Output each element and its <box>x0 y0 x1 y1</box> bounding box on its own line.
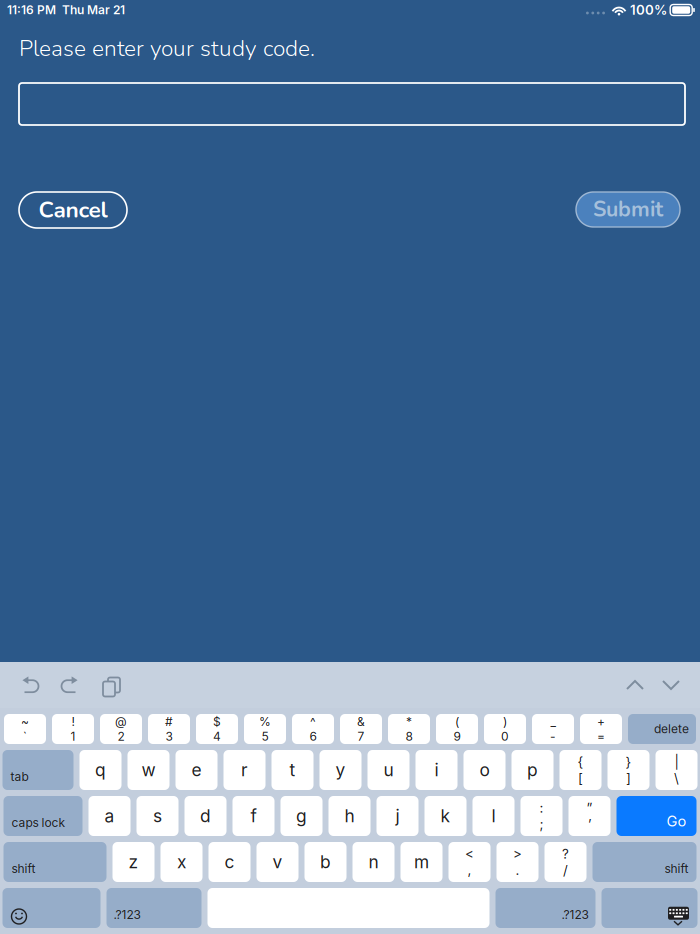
staticText: .?123 <box>561 907 588 922</box>
button[interactable]: delete <box>628 714 696 744</box>
button[interactable]: & <box>340 714 382 744</box>
staticText: % <box>259 714 271 729</box>
staticText: : <box>539 800 543 816</box>
staticText: d <box>200 805 211 826</box>
button[interactable]: a <box>88 796 130 836</box>
staticText: 0 <box>501 729 509 743</box>
button[interactable]: .?123 <box>106 888 201 928</box>
button[interactable]: + <box>580 714 622 744</box>
button[interactable]: * <box>388 714 430 744</box>
button[interactable]: ~ <box>4 714 46 744</box>
staticText: > <box>513 846 522 862</box>
staticText: 2 <box>117 729 124 743</box>
staticText: 8 <box>405 729 412 743</box>
staticText: p <box>527 759 538 780</box>
button[interactable]: < <box>448 842 490 882</box>
staticText: Submit <box>593 195 663 224</box>
button[interactable]: | <box>655 750 697 790</box>
button[interactable]: Hide Keyboard <box>601 888 697 928</box>
staticText: ~ <box>21 714 29 729</box>
staticText: shift <box>664 861 688 876</box>
button[interactable]: shift <box>592 842 696 882</box>
staticText: [ <box>578 770 583 786</box>
staticText: _ <box>550 714 555 729</box>
button[interactable]: s <box>136 796 178 836</box>
button[interactable]: $ <box>196 714 238 744</box>
button[interactable]: { <box>559 750 601 790</box>
button[interactable]: p <box>511 750 553 790</box>
button[interactable]: } <box>607 750 649 790</box>
button[interactable]: Next Field <box>662 679 680 691</box>
button[interactable]: ( <box>436 714 478 744</box>
button[interactable]: e <box>175 750 217 790</box>
staticText: = <box>597 729 605 743</box>
button[interactable]: Cancel <box>19 192 127 228</box>
button[interactable]: # <box>148 714 190 744</box>
button[interactable]: Redo <box>60 676 78 694</box>
button[interactable]: : <box>520 796 562 836</box>
button[interactable]: z <box>112 842 154 882</box>
staticText: c <box>224 851 234 872</box>
button[interactable]: k <box>424 796 466 836</box>
staticText: ( <box>455 714 459 729</box>
staticText: @ <box>115 714 127 729</box>
staticText: f <box>250 805 256 826</box>
button[interactable]: Go <box>616 796 696 836</box>
button[interactable]: w <box>127 750 169 790</box>
staticText: 11:16 PM <box>7 3 56 17</box>
button[interactable]: ^ <box>292 714 334 744</box>
button[interactable]: _ <box>532 714 574 744</box>
button[interactable]: > <box>496 842 538 882</box>
button[interactable]: b <box>304 842 346 882</box>
staticText: l <box>491 805 495 826</box>
staticText: b <box>320 851 331 872</box>
button[interactable]: caps lock <box>3 796 82 836</box>
button[interactable]: .?123 <box>495 888 595 928</box>
button[interactable]: o <box>463 750 505 790</box>
staticText: 4 <box>213 729 221 743</box>
button[interactable]: x <box>160 842 202 882</box>
staticText: $ <box>213 714 221 729</box>
button[interactable]: n <box>352 842 394 882</box>
button[interactable]: f <box>232 796 274 836</box>
staticText: e <box>191 759 201 780</box>
button[interactable]: y <box>319 750 361 790</box>
button[interactable]: m <box>400 842 442 882</box>
staticText: m <box>414 851 429 872</box>
staticText: tab <box>10 769 28 784</box>
button[interactable]: Undo <box>22 676 40 694</box>
staticText: + <box>597 714 605 729</box>
staticText: a <box>104 805 114 826</box>
button[interactable]: ) <box>484 714 526 744</box>
button[interactable]: i <box>415 750 457 790</box>
staticText: * <box>406 714 412 729</box>
button[interactable]: l <box>472 796 514 836</box>
button[interactable]: d <box>184 796 226 836</box>
button[interactable]: ” <box>568 796 610 836</box>
button[interactable]: Emoji <box>2 888 100 928</box>
button[interactable]: ! <box>52 714 94 744</box>
button[interactable]: v <box>256 842 298 882</box>
staticText: - <box>550 729 556 743</box>
button[interactable]: c <box>208 842 250 882</box>
staticText: ’ <box>588 816 591 832</box>
button[interactable]: q <box>79 750 121 790</box>
button[interactable]: t <box>271 750 313 790</box>
staticText: ” <box>586 800 592 816</box>
staticText: s <box>153 805 162 826</box>
button[interactable]: u <box>367 750 409 790</box>
button[interactable]: tab <box>2 750 73 790</box>
button[interactable]: j <box>376 796 418 836</box>
button[interactable]: % <box>244 714 286 744</box>
button[interactable]: r <box>223 750 265 790</box>
button[interactable]: ? <box>544 842 586 882</box>
button[interactable]: @ <box>100 714 142 744</box>
button[interactable]: Submit <box>576 192 680 227</box>
button[interactable]: Previous Field <box>626 679 644 691</box>
button[interactable]: h <box>328 796 370 836</box>
staticText: w <box>141 759 155 780</box>
button[interactable]: shift <box>3 842 106 882</box>
button[interactable]: g <box>280 796 322 836</box>
button[interactable]: Paste <box>100 675 118 695</box>
